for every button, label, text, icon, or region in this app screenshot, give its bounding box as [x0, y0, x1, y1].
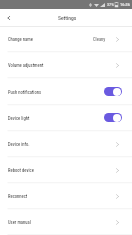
staticText: Device light: [8, 116, 30, 121]
staticText: Settings: [58, 15, 77, 22]
button[interactable]: Volume adjustment: [0, 52, 132, 78]
button[interactable]: Device info.: [0, 131, 132, 157]
button[interactable]: Reconnect: [0, 183, 132, 209]
staticText: Push notifications: [8, 90, 42, 95]
button[interactable]: Device light: [0, 105, 132, 131]
button[interactable]: User manual: [0, 209, 132, 235]
button[interactable]: Push notifications: [0, 79, 132, 105]
staticText: 37%: [107, 2, 114, 7]
button[interactable]: Change name: [0, 26, 132, 52]
staticText: Volume adjustment: [8, 63, 44, 68]
staticText: Reconnect: [8, 194, 28, 199]
staticText: Reboot device: [8, 168, 34, 173]
staticText: Change name: [8, 37, 33, 42]
button[interactable]: Back: [0, 9, 17, 26]
staticText: Device info.: [8, 142, 30, 147]
staticText: Cleany: [93, 37, 106, 42]
staticText: User manual: [8, 220, 31, 225]
button[interactable]: Reboot device: [0, 157, 132, 183]
staticText: 16:36: [120, 2, 130, 7]
